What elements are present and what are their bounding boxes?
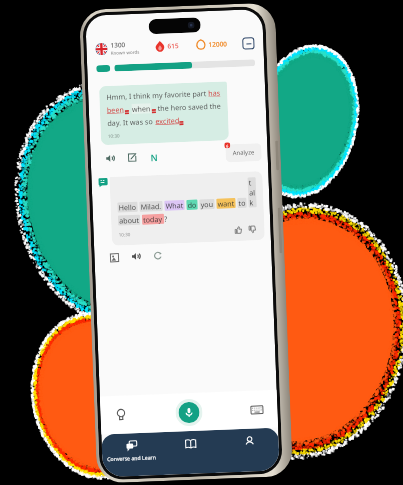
button[interactable]: Regenerate bbox=[151, 249, 165, 262]
staticText: do bbox=[187, 200, 197, 210]
staticText: day. It was so bbox=[107, 116, 155, 128]
staticText: Known words bbox=[110, 49, 140, 56]
staticText: when bbox=[132, 103, 151, 114]
button[interactable]: 615 bbox=[154, 40, 180, 52]
button[interactable]: 12000 bbox=[195, 38, 228, 50]
button[interactable]: Hints bbox=[111, 405, 131, 425]
staticText: 12000 bbox=[208, 39, 227, 49]
button[interactable]: Library bbox=[160, 437, 220, 451]
button[interactable]: Analyze bbox=[225, 143, 262, 162]
button[interactable]: Keyboard bbox=[247, 400, 267, 420]
button[interactable]: Play audio bbox=[103, 152, 117, 165]
staticText: want bbox=[217, 198, 235, 209]
button[interactable]: Hmm, I think my favorite part bbox=[99, 81, 229, 145]
button[interactable]: Profile bbox=[219, 435, 279, 449]
staticText: been bbox=[107, 104, 124, 115]
button[interactable]: Dislike bbox=[247, 224, 258, 235]
staticText: to bbox=[238, 198, 246, 208]
staticText: Milad. bbox=[140, 201, 162, 212]
staticText: Converse and Learn bbox=[107, 453, 156, 462]
button[interactable]: Translate bbox=[147, 150, 161, 163]
staticText: about bbox=[119, 215, 139, 226]
button[interactable]: Like bbox=[233, 225, 244, 235]
staticText: Analyze bbox=[232, 148, 255, 157]
staticText: 6 bbox=[226, 143, 229, 148]
staticText: 615 bbox=[167, 41, 180, 51]
staticText: excited bbox=[155, 115, 179, 126]
button[interactable]: Image bbox=[108, 251, 121, 264]
staticText: the hero saved the bbox=[156, 101, 221, 113]
staticText: ? bbox=[164, 214, 168, 224]
staticText: 10:30 bbox=[118, 231, 131, 238]
staticText: 1300 bbox=[110, 40, 125, 50]
button[interactable]: Record voice bbox=[178, 402, 200, 423]
staticText: Hello bbox=[118, 202, 137, 213]
staticText: talk bbox=[248, 177, 256, 207]
button[interactable]: Edit message bbox=[125, 151, 139, 164]
button[interactable]: Collapse bbox=[242, 37, 255, 50]
button[interactable]: Play audio bbox=[129, 250, 143, 263]
staticText: Hmm, I think my favorite part bbox=[106, 88, 208, 102]
staticText: has bbox=[208, 88, 220, 98]
staticText: 10:30 bbox=[108, 132, 120, 139]
button[interactable]: 1300 bbox=[95, 40, 140, 56]
staticText: you bbox=[200, 199, 214, 209]
button[interactable]: Hello bbox=[109, 171, 265, 246]
staticText: N bbox=[150, 151, 158, 163]
button[interactable]: Converse and Learn bbox=[102, 439, 161, 462]
staticText: today bbox=[143, 214, 163, 225]
staticText: What bbox=[165, 200, 184, 211]
